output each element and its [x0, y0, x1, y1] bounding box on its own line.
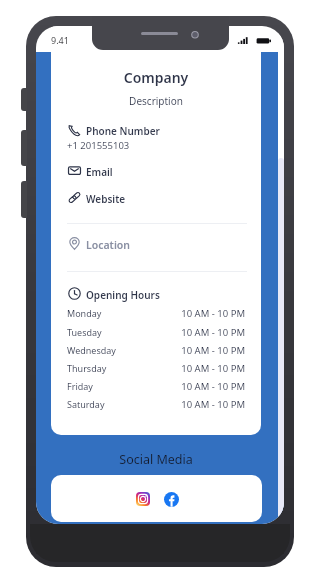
staticText: Friday: [67, 380, 93, 392]
staticText: 10 AM - 10 PM: [51, 380, 245, 393]
staticText: +1 201555103: [67, 139, 130, 152]
button[interactable]: Email: [67, 163, 245, 178]
staticText: Social Media: [51, 451, 261, 468]
staticText: 10 AM - 10 PM: [51, 398, 245, 411]
staticText: Monday: [67, 307, 102, 319]
staticText: Wednesday: [67, 344, 116, 356]
staticText: Email: [86, 165, 113, 179]
staticText: Description: [51, 94, 261, 108]
other: Signal and battery: [237, 35, 273, 47]
staticText: Thursday: [67, 362, 107, 374]
button[interactable]: Phone Number: [67, 122, 245, 137]
staticText: 10 AM - 10 PM: [51, 326, 245, 339]
staticText: 10 AM - 10 PM: [51, 362, 245, 375]
button[interactable]: Website: [67, 190, 245, 205]
button[interactable]: Facebook: [161, 489, 181, 509]
staticText: Location: [86, 238, 131, 252]
staticText: Tuesday: [67, 326, 102, 338]
staticText: Opening Hours: [86, 288, 160, 302]
staticText: 9.41: [51, 34, 69, 46]
staticText: Phone Number: [86, 124, 160, 138]
staticText: 10 AM - 10 PM: [51, 344, 245, 357]
staticText: 10 AM - 10 PM: [51, 307, 245, 320]
button[interactable]: Instagram: [133, 489, 153, 509]
button[interactable]: Instagram: [51, 475, 262, 522]
staticText: Company: [51, 68, 261, 87]
staticText: Website: [86, 192, 126, 206]
staticText: Saturday: [67, 398, 105, 410]
button[interactable]: Location: [67, 236, 245, 251]
